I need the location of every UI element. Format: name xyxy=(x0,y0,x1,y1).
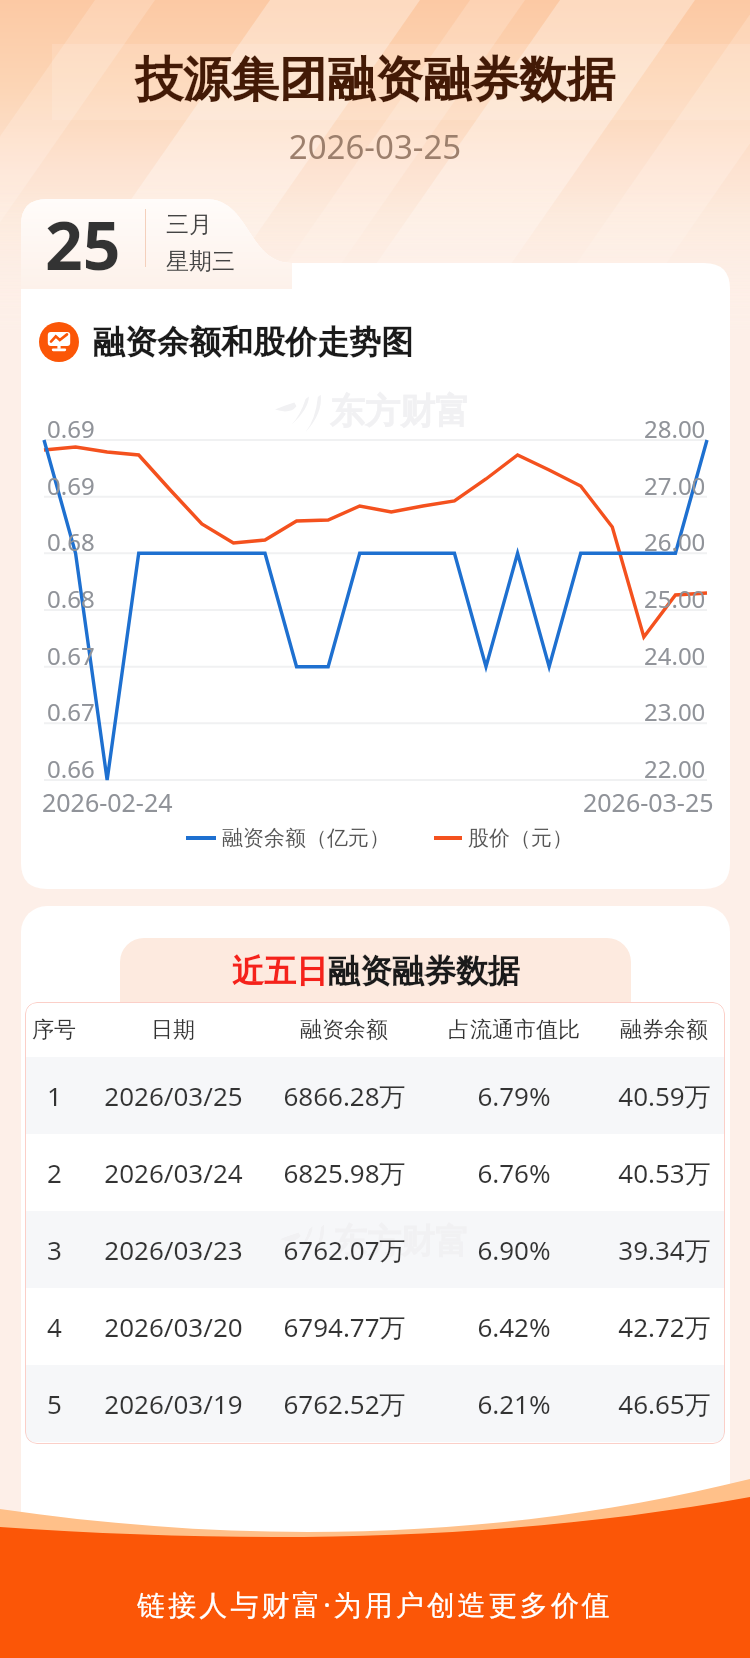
staticText: 3 xyxy=(47,1232,62,1267)
staticText: 融券余额 xyxy=(620,1016,708,1044)
staticText: 24.00 xyxy=(644,639,706,672)
button[interactable]: 2 xyxy=(25,1134,725,1211)
staticText: 6762.52万 xyxy=(283,1386,406,1422)
staticText: 22.00 xyxy=(644,752,706,785)
staticText: 三月 xyxy=(166,210,212,239)
staticText: 5 xyxy=(47,1386,62,1421)
button[interactable]: 东方财富 xyxy=(25,1211,725,1288)
button[interactable]: 25 xyxy=(21,199,289,277)
staticText: 融资余额 xyxy=(300,1016,388,1044)
staticText: 0.67 xyxy=(47,695,95,728)
staticText: 6762.07万 xyxy=(283,1232,406,1268)
staticText: 东方财富 xyxy=(330,389,470,433)
staticText: 0.69 xyxy=(47,412,95,445)
staticText: 26.00 xyxy=(644,525,706,558)
staticText: 6794.77万 xyxy=(283,1309,406,1345)
staticText: 0.69 xyxy=(47,469,95,502)
staticText: 融资余额和股价走势图 xyxy=(93,322,413,362)
button[interactable]: 5 xyxy=(25,1365,725,1442)
staticText: 2026/03/19 xyxy=(104,1386,243,1421)
staticText: 39.34万 xyxy=(618,1232,711,1268)
staticText: 6825.98万 xyxy=(283,1155,406,1191)
staticText: 占流通市值比 xyxy=(448,1016,580,1044)
staticText: 2026-03-25 xyxy=(583,785,714,819)
staticText: 27.00 xyxy=(644,469,706,502)
staticText: 40.53万 xyxy=(618,1155,711,1191)
staticText: 6.42% xyxy=(477,1309,551,1344)
button[interactable]: 近五日 xyxy=(120,938,631,1004)
staticText: 6.90% xyxy=(477,1232,551,1267)
staticText: 2026-02-24 xyxy=(42,785,173,819)
staticText: 28.00 xyxy=(644,412,706,445)
staticText: 2026/03/23 xyxy=(104,1232,243,1267)
staticText: 6.79% xyxy=(477,1078,551,1113)
other: Chart xyxy=(39,322,79,362)
staticText: 融资余额（亿元） xyxy=(222,825,390,851)
staticText: 1 xyxy=(47,1078,62,1113)
staticText: 0.68 xyxy=(47,582,95,615)
staticText: 0.67 xyxy=(47,639,95,672)
staticText: 东方财富 xyxy=(333,1220,469,1263)
staticText: 0.66 xyxy=(47,752,95,785)
staticText: 42.72万 xyxy=(618,1309,711,1345)
staticText: 23.00 xyxy=(644,695,706,728)
staticText: 6.76% xyxy=(477,1155,551,1190)
staticText: 链接人与财富·为用户创造更多价值 xyxy=(0,1585,750,1623)
staticText: 40.59万 xyxy=(618,1078,711,1114)
button[interactable]: Chart xyxy=(39,322,413,362)
staticText: 2026/03/25 xyxy=(104,1078,243,1113)
staticText: 46.65万 xyxy=(618,1386,711,1422)
staticText: 日期 xyxy=(151,1016,195,1044)
staticText: 2026/03/24 xyxy=(104,1155,243,1190)
staticText: 2026/03/20 xyxy=(104,1309,243,1344)
button[interactable]: 1 xyxy=(25,1057,725,1134)
staticText: 4 xyxy=(47,1309,62,1344)
staticText: 星期三 xyxy=(166,247,235,276)
staticText: 6866.28万 xyxy=(283,1078,406,1114)
staticText: 6.21% xyxy=(477,1386,551,1421)
staticText: 0.68 xyxy=(47,525,95,558)
staticText: 2026-03-25 xyxy=(0,124,750,169)
staticText: 序号 xyxy=(32,1016,76,1044)
staticText: 2 xyxy=(47,1155,62,1190)
staticText: 25 xyxy=(45,199,121,277)
staticText: 技源集团融资融券数据 xyxy=(0,50,750,110)
staticText: 25.00 xyxy=(644,582,706,615)
staticText: 股价（元） xyxy=(468,825,573,851)
staticText: 近五日 xyxy=(232,951,328,991)
button[interactable]: 4 xyxy=(25,1288,725,1365)
staticText: 融资融券数据 xyxy=(328,951,520,991)
